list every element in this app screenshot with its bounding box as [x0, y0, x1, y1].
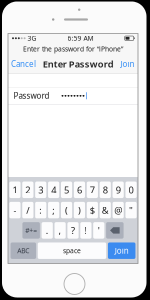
button[interactable]: '	[93, 222, 104, 239]
staticText: 2	[25, 184, 30, 196]
staticText: Enter the password for “iPhone”	[23, 45, 123, 53]
button[interactable]: &	[100, 202, 111, 218]
button[interactable]: 2	[22, 182, 33, 198]
staticText: /	[26, 204, 29, 216]
button[interactable]: :	[35, 202, 46, 218]
staticText: :	[39, 204, 42, 216]
button[interactable]: 7	[87, 182, 98, 198]
button[interactable]: Join	[108, 242, 135, 259]
button[interactable]: space	[38, 242, 106, 259]
button[interactable]: (	[61, 202, 72, 218]
button[interactable]: Delete	[106, 222, 124, 239]
button[interactable]: @	[113, 202, 124, 218]
button[interactable]: Cancel	[8, 55, 39, 72]
staticText: @	[114, 204, 122, 216]
button[interactable]: Join	[117, 55, 138, 72]
staticText: ••••••••	[61, 90, 85, 101]
staticText: 0	[129, 184, 134, 196]
button[interactable]: !	[80, 222, 91, 239]
staticText: 6:59 AM	[67, 34, 93, 43]
button[interactable]: 8	[100, 182, 111, 198]
staticText: Join	[120, 59, 134, 69]
staticText: ,	[59, 224, 62, 237]
button[interactable]: ,	[54, 222, 66, 239]
staticText: 1	[12, 184, 17, 196]
button[interactable]: 9	[113, 182, 124, 198]
staticText: 8	[103, 184, 108, 196]
button[interactable]: #+=	[22, 222, 40, 239]
staticText: 6	[77, 184, 82, 196]
button[interactable]: -	[9, 202, 20, 218]
staticText: 5	[64, 184, 69, 196]
staticText: Cancel	[11, 59, 36, 69]
staticText: Password	[13, 90, 49, 101]
button[interactable]: ;	[48, 202, 59, 218]
button[interactable]: .	[42, 222, 53, 239]
staticText: space	[63, 246, 81, 255]
button[interactable]: 5	[61, 182, 72, 198]
button[interactable]: /	[22, 202, 33, 218]
staticText: .	[46, 224, 49, 237]
button[interactable]: 6	[74, 182, 85, 198]
staticText: #+=	[25, 226, 37, 235]
staticText: 9	[116, 184, 121, 196]
button[interactable]: ?	[67, 222, 79, 239]
button[interactable]: 0	[125, 182, 137, 198]
staticText: &	[102, 204, 109, 216]
staticText: -	[13, 204, 16, 216]
button[interactable]: "	[125, 202, 137, 218]
button[interactable]: )	[74, 202, 85, 218]
button[interactable]: 1	[9, 182, 20, 198]
staticText: 3	[38, 184, 43, 196]
staticText: 3G	[27, 34, 36, 43]
staticText: 7	[90, 184, 95, 196]
staticText: '	[98, 224, 100, 237]
staticText: !	[84, 224, 87, 237]
staticText: "	[129, 204, 133, 216]
button[interactable]: ABC	[10, 242, 36, 259]
button[interactable]: Password	[8, 87, 138, 104]
staticText: (	[65, 204, 68, 216]
staticText: Join	[115, 245, 129, 256]
staticText: ?	[71, 224, 75, 237]
staticText: ;	[52, 204, 55, 216]
button[interactable]: 4	[48, 182, 59, 198]
button[interactable]: $	[87, 202, 98, 218]
staticText: $	[90, 204, 95, 216]
staticText: Enter Password	[43, 58, 114, 70]
button[interactable]: 3	[35, 182, 46, 198]
staticText: )	[78, 204, 81, 216]
staticText: 4	[51, 184, 56, 196]
staticText: ABC	[17, 246, 29, 255]
